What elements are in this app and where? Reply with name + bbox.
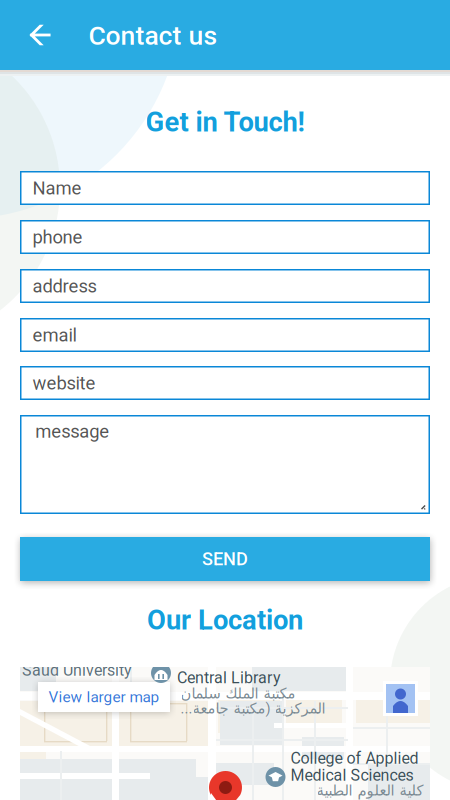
staticText: Saud University bbox=[22, 661, 132, 680]
button[interactable]: Street view bbox=[383, 681, 418, 716]
staticText: Our Location bbox=[147, 604, 303, 636]
button[interactable]: website bbox=[20, 366, 430, 400]
staticText: website bbox=[32, 372, 95, 394]
staticText: المركزية (مكتبة جامعة... bbox=[180, 700, 325, 717]
button[interactable]: email bbox=[20, 318, 430, 352]
button[interactable]: message bbox=[20, 415, 430, 514]
button[interactable]: Name bbox=[20, 171, 430, 205]
button[interactable]: SEND bbox=[20, 537, 430, 581]
button[interactable]: address bbox=[20, 269, 430, 303]
staticText: Get in Touch! bbox=[145, 106, 304, 138]
staticText: كلية العلوم الطبية bbox=[316, 782, 423, 799]
staticText: Contact us bbox=[88, 20, 217, 51]
staticText: Medical Sciences bbox=[290, 766, 413, 785]
staticText: SEND bbox=[202, 548, 248, 570]
button[interactable]: View larger map bbox=[38, 682, 170, 712]
staticText: message bbox=[35, 421, 109, 442]
staticText: Central Library bbox=[177, 668, 281, 687]
staticText: Name bbox=[32, 177, 81, 199]
staticText: مكتبة الملك سلمان bbox=[180, 685, 295, 702]
staticText: address bbox=[32, 275, 96, 297]
staticText: College of Applied bbox=[290, 749, 418, 768]
staticText: View larger map bbox=[48, 688, 159, 706]
staticText: email bbox=[32, 324, 76, 346]
staticText: phone bbox=[32, 226, 82, 248]
button[interactable]: phone bbox=[20, 220, 430, 254]
button[interactable]: Back bbox=[16, 11, 64, 59]
